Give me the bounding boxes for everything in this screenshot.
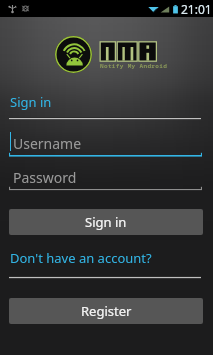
staticText: Username xyxy=(13,134,82,153)
staticText: Password xyxy=(13,168,77,187)
staticText: Register xyxy=(81,302,132,320)
button[interactable]: Password xyxy=(9,165,202,192)
staticText: Sign in xyxy=(85,213,127,231)
staticText: Notify My Android xyxy=(100,62,168,70)
button[interactable]: Sign in xyxy=(10,93,52,111)
button[interactable]: Don't have an account? xyxy=(10,249,152,267)
button[interactable]: Register xyxy=(9,298,203,324)
button[interactable]: Username xyxy=(9,131,202,158)
staticText: 21:01 xyxy=(181,1,212,17)
other: NMA Notify My Android xyxy=(0,0,213,355)
button[interactable]: Sign in xyxy=(9,209,203,235)
